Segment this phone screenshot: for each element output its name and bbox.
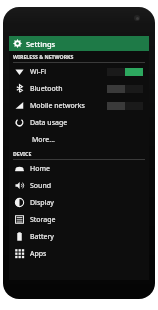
- button[interactable]: Toggle off: [107, 85, 143, 93]
- staticText: Battery: [30, 232, 54, 242]
- button[interactable]: Wi-Fi: [9, 63, 149, 80]
- staticText: Settings: [26, 39, 56, 49]
- button[interactable]: Toggle off: [107, 102, 143, 110]
- button[interactable]: Mobile networks: [9, 97, 149, 114]
- button[interactable]: Bluetooth: [9, 80, 149, 97]
- staticText: DEVICE: [13, 150, 32, 157]
- staticText: Wi-Fi: [30, 67, 47, 77]
- button[interactable]: Storage: [9, 211, 149, 228]
- button[interactable]: More...: [9, 131, 149, 148]
- staticText: More...: [32, 135, 55, 145]
- staticText: Mobile networks: [30, 101, 85, 111]
- staticText: Apps: [30, 249, 47, 259]
- staticText: Home: [30, 164, 50, 174]
- button[interactable]: Sound: [9, 177, 149, 194]
- staticText: Sound: [30, 181, 52, 191]
- button[interactable]: Home: [9, 160, 149, 177]
- staticText: Storage: [30, 215, 56, 225]
- staticText: Data usage: [30, 118, 68, 128]
- button[interactable]: Settings: [9, 36, 149, 51]
- button[interactable]: Display: [9, 194, 149, 211]
- button[interactable]: Apps: [9, 245, 149, 262]
- button[interactable]: Toggle on: [107, 68, 143, 76]
- button[interactable]: Battery: [9, 228, 149, 245]
- staticText: Bluetooth: [30, 84, 63, 94]
- staticText: Display: [30, 198, 54, 208]
- button[interactable]: Data usage: [9, 114, 149, 131]
- staticText: WIRELESS & NETWORKS: [13, 53, 74, 60]
